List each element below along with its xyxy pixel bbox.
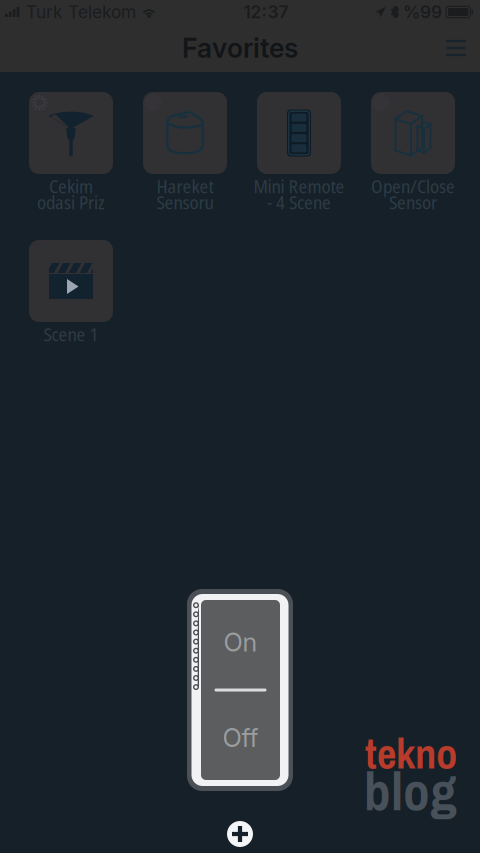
button[interactable]: On	[201, 600, 280, 780]
staticText: Off	[222, 722, 258, 753]
staticText: odasi Priz	[37, 189, 105, 215]
button[interactable]: Menu	[432, 25, 480, 71]
button[interactable]: Open/Close	[356, 92, 470, 240]
staticText: Scene 1	[43, 321, 98, 347]
staticText: Sensor	[389, 189, 437, 215]
staticText: Sensoru	[156, 189, 213, 215]
staticText: Cekim	[49, 173, 93, 199]
staticText: blog	[364, 755, 457, 827]
staticText: Favorites	[182, 32, 298, 64]
staticText: Open/Close	[371, 173, 455, 199]
staticText: Hareket	[156, 173, 213, 199]
button[interactable]: Scene 1	[14, 240, 128, 388]
button[interactable]: Cekim	[14, 92, 128, 240]
staticText: %99	[403, 1, 442, 22]
button[interactable]: Hareket	[128, 92, 242, 240]
staticText: 12:37	[243, 1, 288, 22]
button[interactable]: Mini Remote	[242, 92, 356, 240]
staticText: - 4 Scene	[267, 189, 331, 215]
button[interactable]: Add device	[216, 815, 264, 853]
staticText: Turk Telekom	[26, 1, 136, 22]
staticText: On	[223, 627, 257, 658]
staticText: tekno	[365, 724, 457, 782]
staticText: Mini Remote	[253, 173, 344, 199]
